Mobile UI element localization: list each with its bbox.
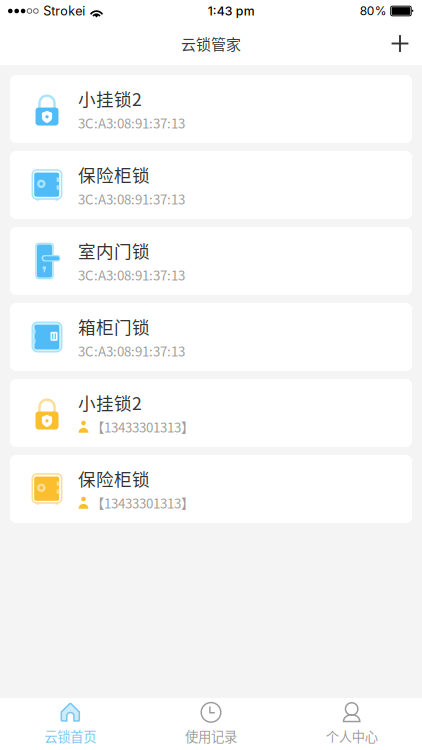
button[interactable]: 小挂锁2	[10, 379, 412, 447]
staticText: 80%	[360, 4, 387, 18]
staticText: 3C:A3:08:91:37:13	[78, 265, 185, 284]
staticText: 【13433301313】	[91, 493, 194, 512]
staticText: 使用记录	[185, 726, 237, 746]
button[interactable]: Add	[378, 22, 422, 65]
staticText: 3C:A3:08:91:37:13	[78, 189, 185, 208]
staticText: 云锁管家	[181, 33, 241, 54]
staticText: 3C:A3:08:91:37:13	[78, 341, 185, 360]
staticText: 小挂锁2	[78, 86, 142, 111]
button[interactable]: 个人中心	[281, 698, 422, 750]
button[interactable]: 箱柜门锁	[10, 303, 412, 371]
button[interactable]: 使用记录	[141, 698, 281, 750]
staticText: 【13433301313】	[91, 417, 194, 436]
staticText: 个人中心	[326, 726, 378, 746]
staticText: Strokei	[43, 3, 85, 19]
button[interactable]: 小挂锁2	[10, 75, 412, 143]
staticText: 保险柜锁	[78, 466, 150, 491]
staticText: 1:43 pm	[208, 4, 255, 18]
button[interactable]: 云锁首页	[0, 698, 141, 750]
staticText: 小挂锁2	[78, 390, 142, 415]
button[interactable]: 室内门锁	[10, 227, 412, 295]
staticText: 云锁首页	[44, 726, 96, 746]
staticText: 保险柜锁	[78, 162, 150, 187]
button[interactable]: 保险柜锁	[10, 151, 412, 219]
button[interactable]: 保险柜锁	[10, 455, 412, 523]
staticText: 室内门锁	[78, 238, 150, 263]
staticText: 3C:A3:08:91:37:13	[78, 113, 185, 132]
staticText: 箱柜门锁	[78, 314, 150, 339]
